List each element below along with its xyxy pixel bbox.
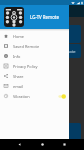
button[interactable]: Vibration bbox=[0, 91, 69, 101]
button[interactable]: Home bbox=[40, 142, 45, 147]
button[interactable]: Saved Remote bbox=[0, 41, 69, 51]
staticText: Vibration bbox=[13, 94, 30, 99]
button[interactable]: Info bbox=[0, 51, 69, 61]
staticText: Saved Remote bbox=[13, 44, 40, 49]
button[interactable]: Home bbox=[0, 31, 69, 41]
staticText: Home bbox=[13, 34, 25, 39]
button[interactable]: Back bbox=[17, 142, 22, 147]
button[interactable]: email bbox=[0, 81, 69, 91]
staticText: LG-TV Remote bbox=[30, 14, 59, 20]
button[interactable]: Recent apps bbox=[62, 142, 67, 147]
staticText: Share bbox=[13, 74, 24, 79]
button[interactable]: Share bbox=[0, 71, 69, 81]
staticText: Info bbox=[13, 54, 21, 59]
staticText: email bbox=[13, 84, 24, 89]
staticText: Smart TV Remote bbox=[43, 49, 76, 54]
staticText: Privacy Policy bbox=[13, 64, 38, 69]
button[interactable]: Privacy Policy bbox=[0, 61, 69, 71]
